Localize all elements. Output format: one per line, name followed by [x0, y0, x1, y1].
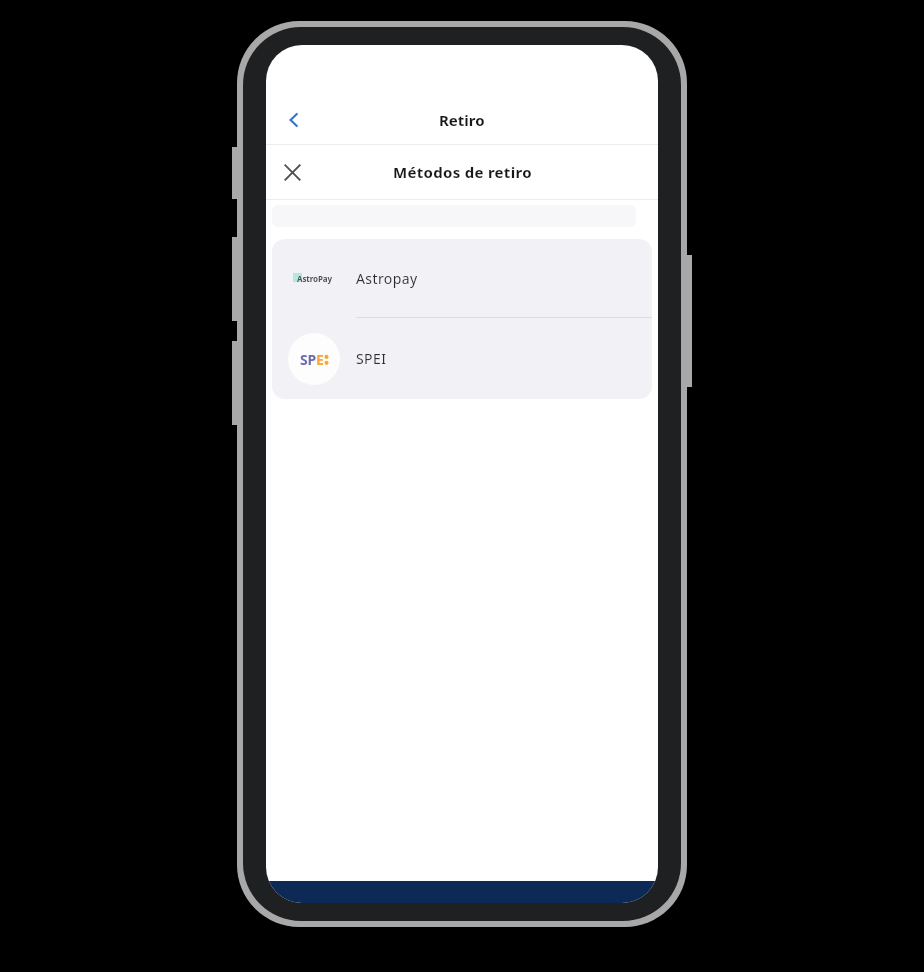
button[interactable]: SP [272, 318, 652, 399]
button[interactable]: AstroPay [272, 239, 652, 317]
staticText: E [316, 350, 324, 369]
staticText: Astropay [356, 269, 418, 288]
staticText: Retiro [439, 110, 485, 130]
staticText: Métodos de retiro [393, 162, 532, 182]
staticText: SPEI [356, 349, 387, 368]
staticText: AstroPay [297, 273, 332, 284]
staticText: SP [300, 350, 316, 369]
button[interactable]: Cerrar [270, 150, 314, 194]
button[interactable]: Atrás [272, 98, 316, 142]
